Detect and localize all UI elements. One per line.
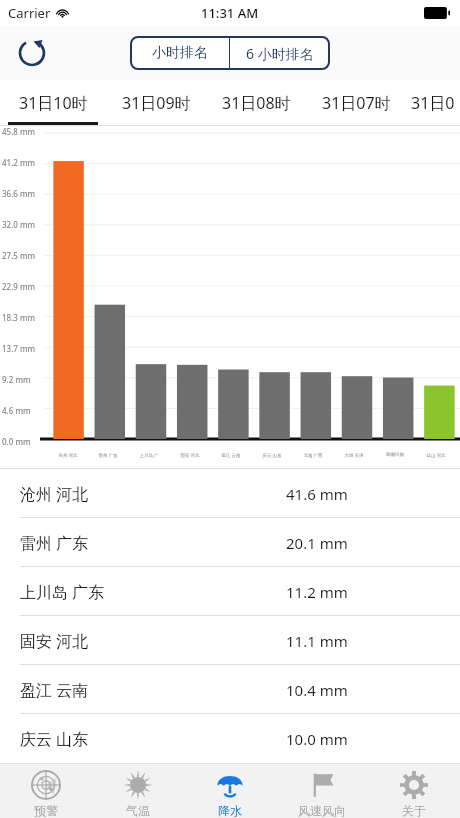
- staticText: 11.1 mm: [286, 631, 348, 651]
- button[interactable]: 庆云 山东: [0, 714, 460, 763]
- button[interactable]: 气温: [92, 763, 184, 818]
- staticText: 盈江 云南: [20, 679, 89, 701]
- button[interactable]: 固安 河北: [0, 616, 460, 665]
- staticText: 13.7 mm: [2, 343, 36, 354]
- staticText: Carrier: [8, 4, 51, 22]
- button[interactable]: 31日08时: [206, 80, 306, 126]
- staticText: 雷州 广东: [98, 452, 118, 458]
- staticText: 盈江 云南: [221, 452, 241, 458]
- staticText: 固安 河北: [180, 452, 200, 458]
- staticText: 4.6 mm: [2, 405, 31, 416]
- button[interactable]: 小时排名: [131, 37, 229, 69]
- staticText: 11.2 mm: [286, 582, 348, 602]
- staticText: 41.2 mm: [2, 157, 36, 168]
- staticText: 0.0 mm: [2, 436, 31, 447]
- button[interactable]: 降水: [184, 763, 276, 818]
- staticText: 庆云 山东: [262, 452, 282, 458]
- staticText: 31日0: [411, 92, 455, 114]
- staticText: 固安 河北: [20, 630, 89, 652]
- staticText: 沧州 河北: [20, 483, 89, 505]
- staticText: 雷州 广东: [20, 532, 89, 554]
- button[interactable]: 31日07时: [306, 80, 406, 126]
- staticText: 庆云 山东: [20, 728, 89, 750]
- staticText: 小时排名: [152, 44, 208, 62]
- button[interactable]: 预警: [0, 763, 92, 818]
- button[interactable]: 31日10时: [0, 80, 106, 126]
- button[interactable]: 31日09时: [106, 80, 206, 126]
- staticText: 36.6 mm: [2, 188, 36, 199]
- button[interactable]: Refresh: [14, 35, 50, 71]
- button[interactable]: 雷州 广东: [0, 518, 460, 567]
- staticText: 气温: [126, 803, 150, 818]
- staticText: 31日10时: [19, 92, 88, 114]
- staticText: 6 小时排名: [246, 44, 314, 63]
- button[interactable]: 6 小时排名: [230, 37, 329, 69]
- staticText: 预警: [34, 803, 58, 818]
- staticText: 22.9 mm: [2, 281, 36, 292]
- button[interactable]: 风速风向: [276, 763, 368, 818]
- staticText: 31日08时: [222, 92, 291, 114]
- button[interactable]: 31日0: [406, 80, 460, 126]
- staticText: 沧州 河北: [58, 452, 78, 458]
- button[interactable]: 关于: [368, 763, 460, 818]
- staticText: 45.8 mm: [2, 126, 36, 137]
- button[interactable]: 盈江 云南: [0, 665, 460, 714]
- staticText: 20.1 mm: [286, 533, 348, 553]
- staticText: 27.5 mm: [2, 250, 36, 261]
- staticText: 10.0 mm: [286, 729, 348, 749]
- staticText: 喀喇沁旗: [386, 452, 404, 458]
- staticText: 18.3 mm: [2, 312, 36, 323]
- button[interactable]: 沧州 河北: [0, 469, 460, 518]
- staticText: 32.0 mm: [2, 219, 36, 230]
- staticText: 盐山 河北: [426, 452, 446, 458]
- staticText: 31日07时: [322, 92, 391, 114]
- staticText: 关于: [402, 803, 426, 818]
- staticText: 10.4 mm: [286, 680, 348, 700]
- staticText: 上川岛 广: [139, 452, 159, 458]
- staticText: 11:31 AM: [201, 4, 259, 22]
- staticText: 降水: [218, 803, 242, 818]
- staticText: 大港 天津: [344, 452, 364, 458]
- staticText: 9.2 mm: [2, 374, 31, 385]
- staticText: 31日09时: [122, 92, 191, 114]
- button[interactable]: 上川岛 广东: [0, 567, 460, 616]
- staticText: 41.6 mm: [286, 484, 348, 504]
- staticText: 上川岛 广东: [20, 581, 105, 603]
- staticText: 风速风向: [298, 803, 346, 818]
- staticText: 北海 广西: [303, 452, 323, 458]
